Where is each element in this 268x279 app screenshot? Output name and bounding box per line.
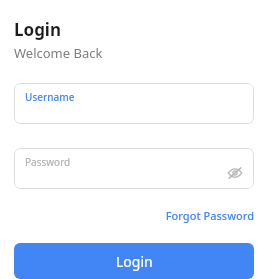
staticText: Username bbox=[25, 90, 75, 104]
button[interactable]: Login bbox=[14, 243, 254, 279]
button[interactable]: Username bbox=[14, 83, 254, 124]
staticText: Login bbox=[116, 252, 153, 271]
staticText: Login bbox=[14, 18, 62, 41]
button[interactable]: Forgot Password bbox=[165, 208, 254, 223]
staticText: Password bbox=[25, 155, 71, 169]
button[interactable]: Password bbox=[14, 148, 254, 189]
staticText: Welcome Back bbox=[14, 44, 103, 62]
button[interactable]: Show password bbox=[225, 163, 245, 183]
